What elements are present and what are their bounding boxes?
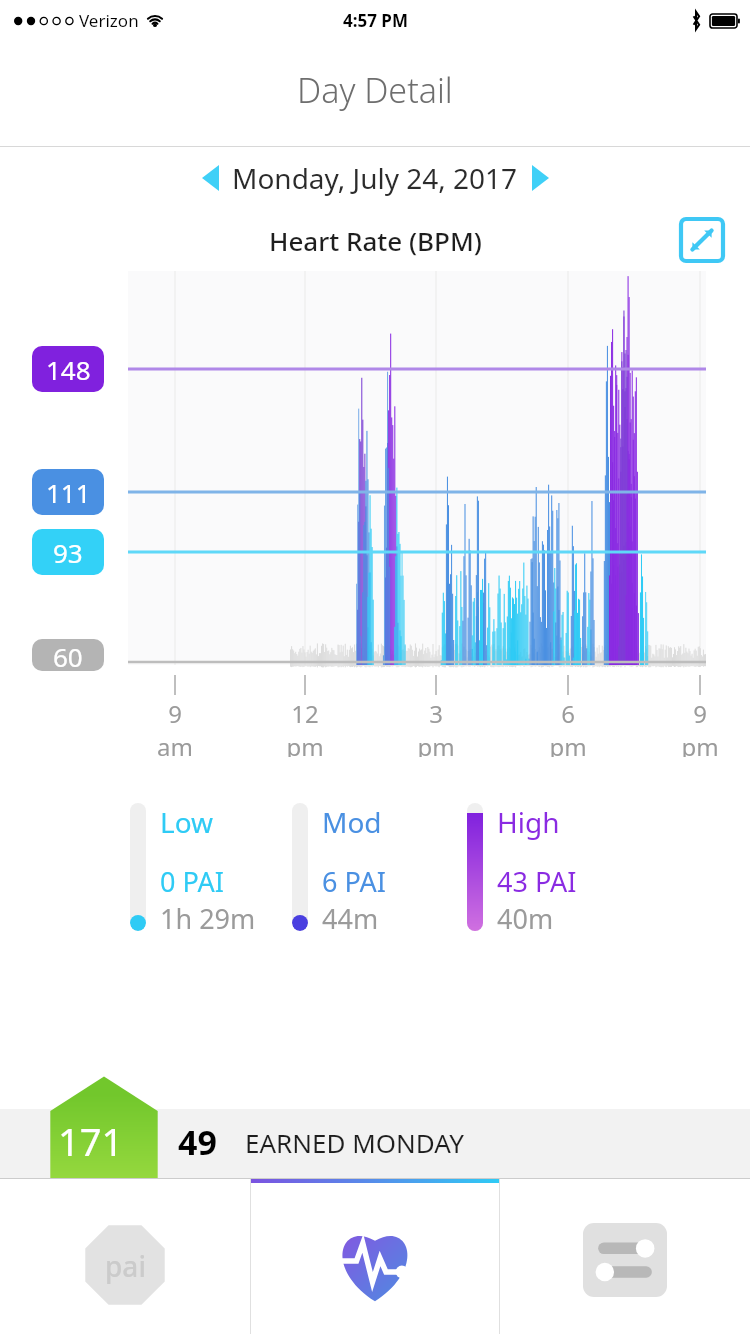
staticText: Low (160, 803, 214, 841)
staticText: Heart Rate (BPM) (269, 223, 482, 258)
staticText: pm (417, 730, 455, 757)
staticText: 9 (693, 697, 707, 730)
button[interactable]: Settings (500, 1179, 750, 1334)
staticText: 6 PAI (322, 863, 386, 900)
staticText: 4:57 PM (343, 9, 408, 32)
staticText: 43 PAI (497, 863, 577, 900)
staticText: 9 (168, 697, 182, 730)
staticText: 3 (429, 697, 443, 730)
staticText: pai (105, 1247, 146, 1285)
staticText: 49 (178, 1119, 217, 1165)
staticText: High (497, 803, 560, 841)
staticText: 148 (46, 352, 91, 387)
staticText: 60 (53, 639, 83, 671)
staticText: 93 (53, 535, 83, 570)
staticText: pm (681, 730, 719, 757)
staticText: 40m (497, 900, 554, 937)
staticText: pm (549, 730, 587, 757)
staticText: 6 (561, 697, 575, 730)
button[interactable]: Next day (518, 156, 562, 200)
staticText: Day Detail (297, 67, 453, 113)
staticText: 0 PAI (160, 863, 224, 900)
staticText: pm (286, 730, 324, 757)
button[interactable]: Previous day (188, 156, 232, 200)
staticText: 44m (322, 900, 379, 937)
staticText: 171 (58, 1115, 124, 1167)
staticText: 1h 29m (160, 900, 256, 937)
button[interactable]: PAI (0, 1179, 250, 1334)
staticText: 111 (46, 475, 91, 510)
staticText: am (157, 730, 193, 757)
staticText: Mod (322, 803, 382, 841)
staticText: 12 (291, 697, 319, 730)
staticText: EARNED MONDAY (245, 1125, 465, 1160)
button[interactable]: Heart rate (250, 1179, 500, 1334)
staticText: Monday, July 24, 2017 (232, 159, 518, 197)
staticText: Verizon (79, 9, 139, 32)
button[interactable]: Expand chart (678, 216, 726, 264)
